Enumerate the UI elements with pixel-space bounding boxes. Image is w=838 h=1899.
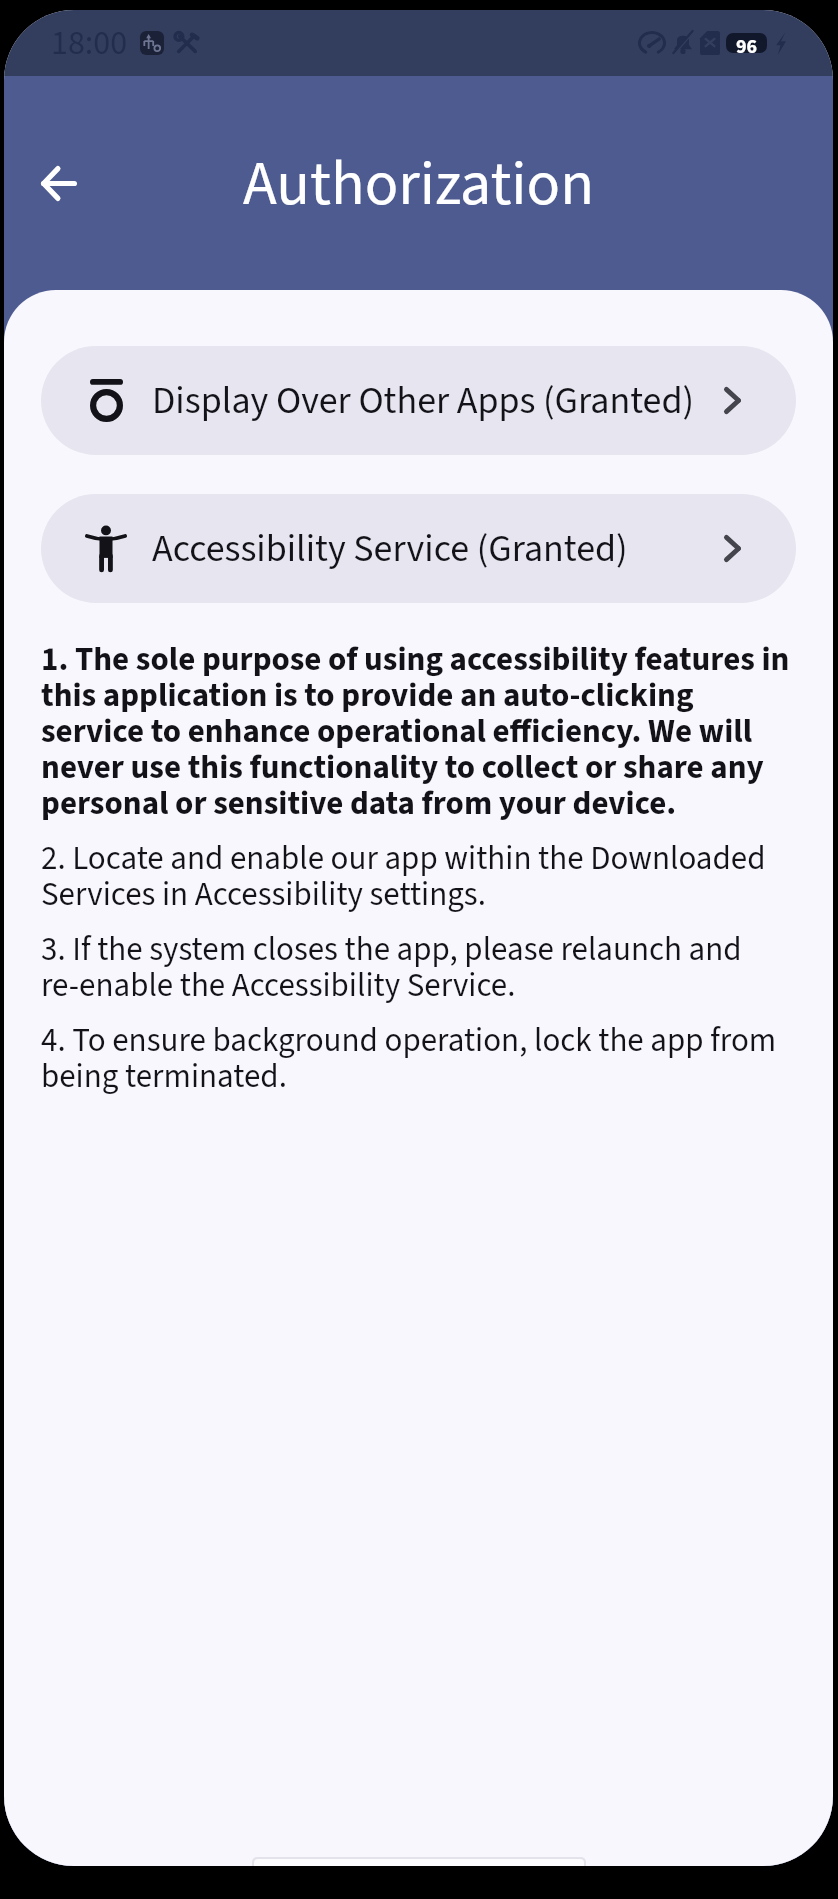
- staticText: Authorization: [243, 141, 595, 229]
- staticText: 96: [736, 33, 758, 53]
- staticText: 18:00: [51, 19, 128, 67]
- staticText: 3. If the system closes the app, please …: [41, 934, 796, 1006]
- staticText: Accessibility Service (Granted): [152, 522, 628, 576]
- staticText: 4. To ensure background operation, lock …: [41, 1025, 796, 1097]
- button[interactable]: Back: [17, 141, 101, 225]
- button[interactable]: Display Over Other Apps (Granted): [41, 346, 796, 455]
- staticText: Display Over Other Apps (Granted): [152, 374, 694, 428]
- staticText: 2. Locate and enable our app within the …: [41, 843, 796, 915]
- staticText: 1. The sole purpose of using accessibili…: [41, 644, 796, 824]
- button[interactable]: Accessibility Service (Granted): [41, 494, 796, 603]
